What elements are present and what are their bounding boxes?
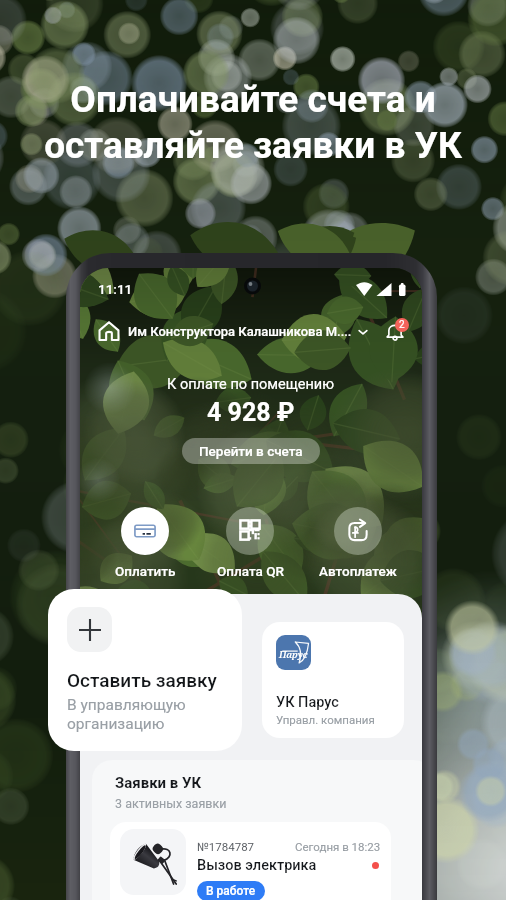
button[interactable]: Парус: [262, 622, 404, 738]
staticText: Оплата QR: [217, 563, 284, 579]
button[interactable]: Notifications: [382, 318, 408, 344]
staticText: К оплате по помещению: [167, 376, 335, 393]
staticText: Оплачивайте счета и оставляйте заявки в …: [44, 78, 462, 167]
staticText: Сегодня в 18:23: [295, 840, 381, 853]
button[interactable]: №1784787: [110, 822, 391, 900]
staticText: Им Конструктора Калашникова М....: [128, 324, 352, 339]
staticText: 2: [399, 319, 405, 331]
staticText: Парус: [279, 648, 308, 661]
staticText: Управл. компания: [276, 713, 375, 726]
button[interactable]: Оплата QR: [195, 507, 305, 579]
staticText: Оставить заявку: [67, 669, 217, 691]
staticText: Оплатить: [115, 563, 176, 579]
staticText: №1784787: [197, 840, 255, 853]
staticText: Заявки в УК: [115, 774, 202, 792]
staticText: Вызов электрика: [197, 857, 317, 874]
staticText: 11:11: [98, 281, 133, 297]
staticText: 4 928 ₽: [207, 398, 295, 427]
staticText: 3 активных заявки: [115, 796, 227, 811]
button[interactable]: Им Конструктора Калашникова М....: [128, 324, 379, 339]
button[interactable]: Оставить заявку: [48, 589, 242, 751]
staticText: УК Парус: [276, 694, 339, 711]
staticText: Перейти в счета: [199, 443, 303, 459]
staticText: В управляющую организацию: [67, 696, 186, 733]
button[interactable]: Оплатить: [90, 507, 200, 579]
staticText: В работе: [206, 884, 256, 898]
staticText: Автоплатеж: [319, 563, 397, 579]
button[interactable]: Автоплатеж: [303, 507, 413, 579]
button[interactable]: Перейти в счета: [182, 438, 320, 464]
other: Home: [98, 320, 120, 342]
